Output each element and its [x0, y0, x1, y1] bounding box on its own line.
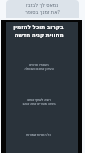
staticText: כל הזכויות שמורות [26, 133, 51, 137]
staticText: ונעדכן אתכם כשנעלה [24, 67, 54, 71]
staticText: בקרוב תוכל להזמין [13, 23, 64, 31]
staticText: באיזה מוצרים אתה אוהב [22, 102, 56, 106]
staticText: רוצה לשתף אותנו [27, 98, 51, 102]
staticText: את זמנך בסופר? [25, 9, 60, 16]
staticText: מחווית קניה חדשה [14, 31, 64, 39]
staticText: השאירו פרטים [29, 63, 49, 67]
button[interactable]: נמאס לך לבזבז [6, 0, 79, 18]
staticText: נמאס לך לבזבז [26, 2, 59, 9]
